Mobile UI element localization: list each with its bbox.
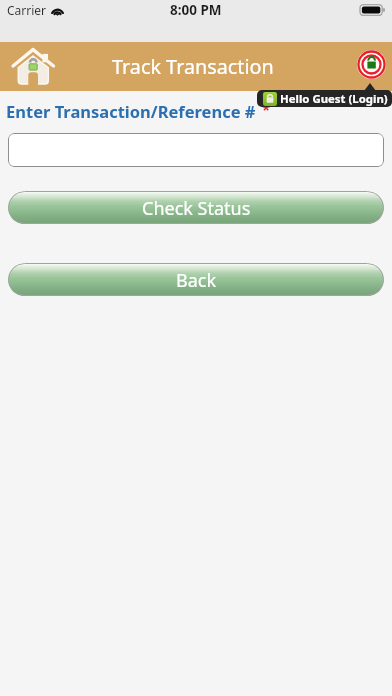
button[interactable]: [8, 133, 384, 167]
staticText: Hello Guest (Login): [280, 91, 388, 107]
staticText: Back: [176, 268, 217, 293]
button[interactable]: Check Status: [8, 191, 384, 224]
button[interactable]: Hello Guest (Login): [257, 90, 392, 107]
staticText: 8:00 PM: [170, 1, 222, 19]
staticText: *: [262, 99, 271, 119]
staticText: Check Status: [142, 196, 251, 221]
staticText: Enter Transaction/Reference #: [6, 100, 256, 122]
button[interactable]: Home: [12, 47, 56, 87]
staticText: Track Transaction: [112, 53, 274, 80]
button[interactable]: Login: [352, 44, 390, 84]
staticText: Carrier: [7, 2, 47, 18]
button[interactable]: Back: [8, 263, 384, 296]
